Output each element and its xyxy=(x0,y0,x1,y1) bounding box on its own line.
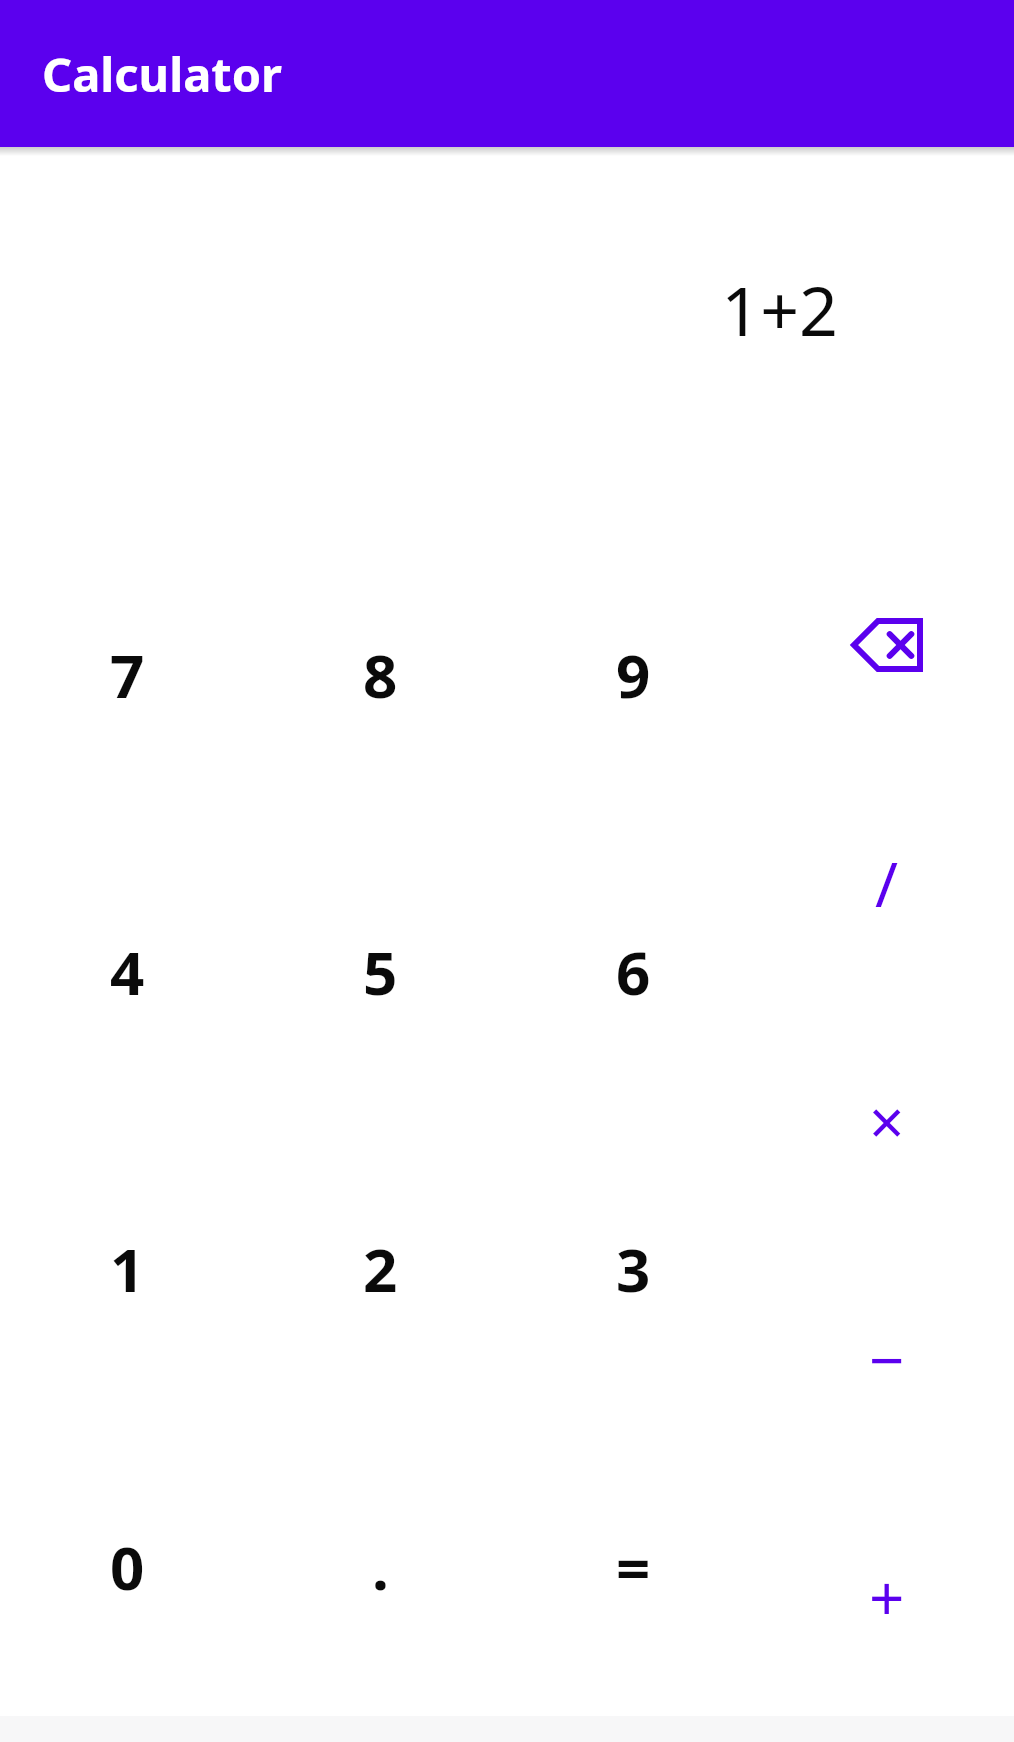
button[interactable]: 5 xyxy=(254,823,507,1120)
button[interactable]: 3 xyxy=(507,1120,760,1418)
button[interactable]: . xyxy=(254,1418,507,1716)
button[interactable]: 2 xyxy=(254,1120,507,1418)
staticText: 5 xyxy=(363,931,398,1013)
staticText: + xyxy=(869,1555,905,1639)
button[interactable]: / xyxy=(760,764,1014,1002)
staticText: 0 xyxy=(110,1526,145,1608)
other: Backspace xyxy=(851,618,923,672)
staticText: 6 xyxy=(616,931,651,1013)
button[interactable]: 9 xyxy=(507,526,760,823)
staticText: 1+2 xyxy=(721,263,838,356)
button[interactable]: + xyxy=(760,1478,1014,1716)
button[interactable]: 0 xyxy=(0,1418,254,1716)
button[interactable]: = xyxy=(507,1418,760,1716)
button[interactable]: 1 xyxy=(0,1120,254,1418)
staticText: × xyxy=(869,1079,905,1163)
staticText: . xyxy=(372,1526,389,1608)
staticText: 1 xyxy=(110,1228,145,1310)
button[interactable]: × xyxy=(760,1002,1014,1240)
staticText: − xyxy=(869,1317,905,1401)
staticText: 8 xyxy=(363,634,398,716)
staticText: 7 xyxy=(110,634,145,716)
button[interactable]: 4 xyxy=(0,823,254,1120)
button[interactable]: 6 xyxy=(507,823,760,1120)
staticText: 9 xyxy=(616,634,651,716)
staticText: Calculator xyxy=(42,42,283,106)
staticText: 4 xyxy=(110,931,145,1013)
staticText: 2 xyxy=(363,1228,398,1310)
button[interactable]: − xyxy=(760,1240,1014,1478)
button[interactable]: Backspace xyxy=(760,526,1014,764)
staticText: 3 xyxy=(616,1228,651,1310)
staticText: = xyxy=(616,1526,651,1608)
button[interactable]: 7 xyxy=(0,526,254,823)
button[interactable]: 8 xyxy=(254,526,507,823)
staticText: / xyxy=(875,841,899,925)
